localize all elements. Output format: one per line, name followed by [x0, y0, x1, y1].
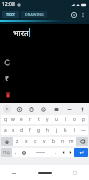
button[interactable]: Undo [2, 57, 13, 68]
button[interactable]: Recent apps [70, 168, 80, 178]
button[interactable]: f [25, 126, 34, 135]
button[interactable]: q [1, 115, 9, 124]
staticText: — [81, 127, 86, 134]
staticText: n [61, 138, 64, 145]
staticText: c [34, 138, 37, 145]
staticText: j [56, 127, 58, 134]
staticText: f [29, 127, 31, 134]
button[interactable]: v [40, 137, 49, 146]
button[interactable]: TEXT [2, 11, 19, 18]
button[interactable]: y [43, 115, 52, 124]
staticText: k [64, 127, 67, 134]
button[interactable]: Delete [2, 89, 13, 100]
staticText: o [73, 116, 76, 123]
button[interactable]: Previous [60, 148, 67, 157]
staticText: t [38, 116, 40, 123]
staticText: DRAWING [25, 12, 44, 17]
button[interactable]: GIF [52, 105, 60, 113]
button[interactable]: Keyboard settings [15, 105, 23, 113]
button[interactable]: Settings [68, 9, 79, 20]
button[interactable]: a [1, 126, 9, 135]
staticText: , [15, 149, 17, 156]
button[interactable]: g [34, 126, 43, 135]
button[interactable]: Voice input [78, 105, 86, 113]
button[interactable]: x [22, 137, 31, 146]
staticText: h [46, 127, 49, 134]
button[interactable]: Change language [20, 148, 28, 157]
button[interactable]: t [34, 115, 43, 124]
staticText: e [20, 116, 23, 123]
staticText: TEXT [6, 12, 16, 17]
button[interactable]: Comma [12, 148, 20, 157]
button[interactable]: b [49, 137, 58, 146]
button[interactable]: c [31, 137, 40, 146]
staticText: . [55, 149, 57, 156]
button[interactable]: u [52, 115, 61, 124]
staticText: ₹ [5, 74, 10, 84]
staticText: ?1☺ [3, 150, 10, 155]
staticText: a [4, 127, 7, 134]
button[interactable]: j [52, 126, 61, 135]
button[interactable]: s [9, 126, 17, 135]
button[interactable]: i [61, 115, 70, 124]
staticText: w [11, 116, 15, 123]
button[interactable]: l [70, 126, 79, 135]
button[interactable]: Themes [65, 105, 73, 113]
button[interactable]: n [58, 137, 67, 146]
button[interactable]: DRAWING [21, 11, 47, 18]
staticText: भारत [13, 27, 29, 38]
button[interactable]: Currency [2, 73, 13, 84]
button[interactable]: Enter [74, 148, 88, 157]
staticText: i [65, 116, 67, 123]
button[interactable]: Space [28, 148, 52, 157]
staticText: z [16, 138, 19, 145]
button[interactable]: Expand toolbar [3, 105, 11, 113]
staticText: m [69, 138, 74, 145]
staticText: d [20, 127, 23, 134]
staticText: p [82, 116, 85, 123]
button[interactable]: r [25, 115, 34, 124]
staticText: r [29, 116, 31, 123]
button[interactable]: Symbols [1, 148, 12, 157]
staticText: 12:08 [2, 1, 15, 8]
staticText: y [46, 116, 49, 123]
button[interactable]: Stickers [39, 105, 47, 113]
button[interactable]: Clipboard [27, 105, 35, 113]
staticText: x [25, 138, 28, 145]
button[interactable]: — [79, 126, 88, 135]
staticText: g [37, 127, 40, 134]
button[interactable]: More options [79, 11, 87, 19]
button[interactable]: Backspace [76, 137, 88, 146]
button[interactable]: Shift [1, 137, 13, 146]
button[interactable]: k [61, 126, 70, 135]
button[interactable]: Home [38, 172, 52, 174]
button[interactable]: o [70, 115, 79, 124]
staticText: q [4, 116, 7, 123]
button[interactable]: p [79, 115, 88, 124]
staticText: u [55, 116, 58, 123]
button[interactable]: e [17, 115, 25, 124]
button[interactable]: Next [67, 148, 74, 157]
button[interactable]: h [43, 126, 52, 135]
button[interactable]: d [17, 126, 25, 135]
staticText: l [74, 127, 76, 134]
staticText: b [52, 138, 55, 145]
button[interactable]: Period [52, 148, 60, 157]
button[interactable]: Back [9, 168, 19, 178]
button[interactable]: z [13, 137, 22, 146]
staticText: v [43, 138, 46, 145]
button[interactable]: m [67, 137, 76, 146]
button[interactable]: w [9, 115, 17, 124]
staticText: s [12, 127, 15, 134]
